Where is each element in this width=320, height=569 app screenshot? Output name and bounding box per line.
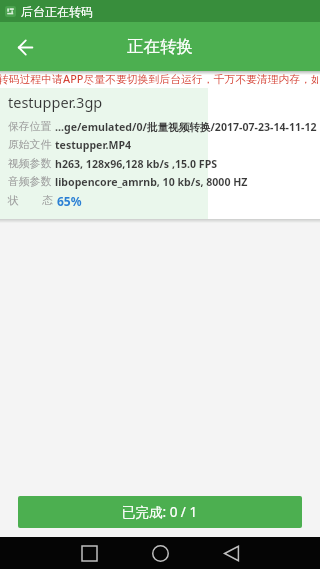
staticText: 后台正在转码 [21,4,93,19]
staticText: h263, 128x96,128 kb/s ,15.0 FPS [55,157,218,171]
staticText: 正在转换 [127,36,193,57]
staticText: 转码过程中请APP尽量不要切换到后台运行，千万不要清理内存，如 [0,71,318,86]
staticText: 已完成: 0 / 1 [122,503,198,521]
button[interactable]: Home [137,537,183,569]
staticText: 音频参数 [8,175,52,189]
button[interactable]: 已完成: 0 / 1 [18,496,302,528]
staticText: 态 [42,194,53,208]
button[interactable]: Recent apps [66,537,112,569]
staticText: 65% [57,193,82,209]
staticText: 原始文件 [8,138,52,152]
staticText: 视频参数 [8,157,52,171]
staticText: 状 [8,194,19,208]
staticText: testupper.MP4 [55,138,132,152]
button[interactable]: Back [208,537,254,569]
button[interactable]: Back [8,30,42,64]
staticText: 保存位置 [8,120,52,134]
staticText: ...ge/emulated/0/批量视频转换/2017-07-23-14-11… [55,120,317,134]
staticText: libopencore_amrnb, 10 kb/s, 8000 HZ [55,175,248,189]
staticText: testupper.3gp [8,92,103,112]
